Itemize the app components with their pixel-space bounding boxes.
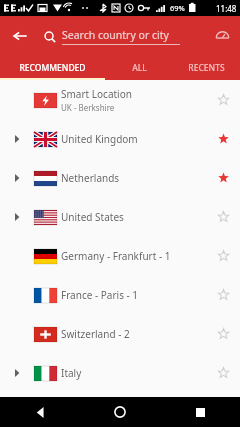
button[interactable]: Speed test bbox=[209, 23, 235, 49]
button[interactable]: Back bbox=[6, 22, 34, 50]
staticText: Search country or city bbox=[62, 28, 169, 42]
button[interactable]: Search country or city bbox=[44, 28, 200, 45]
button[interactable]: Add favourite bbox=[206, 236, 240, 275]
button[interactable]: ALL bbox=[105, 56, 173, 80]
button[interactable]: Recents bbox=[160, 397, 240, 427]
button[interactable]: Add favourite bbox=[206, 314, 240, 353]
button[interactable]: Netherlands bbox=[0, 158, 240, 197]
button[interactable]: Remove favourite bbox=[206, 119, 240, 158]
staticText: RECENTS bbox=[188, 62, 225, 74]
button[interactable]: Home bbox=[80, 397, 160, 427]
button[interactable]: Back bbox=[0, 397, 80, 427]
staticText: 11:48 bbox=[216, 3, 237, 14]
staticText: RECOMMENDED bbox=[19, 62, 86, 74]
button[interactable]: Remove favourite bbox=[206, 158, 240, 197]
staticText: Italy bbox=[61, 366, 82, 380]
staticText: Switzerland - 2 bbox=[61, 327, 130, 341]
button[interactable]: RECENTS bbox=[173, 56, 240, 80]
staticText: 69% bbox=[170, 3, 185, 13]
button[interactable]: Switzerland - 2 bbox=[0, 314, 240, 353]
button[interactable]: Add favourite bbox=[206, 197, 240, 236]
button[interactable]: United Kingdom bbox=[0, 119, 240, 158]
staticText: France - Paris - 1 bbox=[61, 288, 139, 302]
button[interactable]: United States bbox=[0, 197, 240, 236]
button[interactable]: RECOMMENDED bbox=[0, 56, 105, 80]
button[interactable]: Add favourite bbox=[206, 80, 240, 119]
staticText: Netherlands bbox=[61, 171, 120, 185]
staticText: Smart Location bbox=[61, 87, 132, 101]
staticText: ALL bbox=[132, 62, 147, 74]
button[interactable]: Add favourite bbox=[206, 275, 240, 314]
button[interactable]: Germany - Frankfurt - 1 bbox=[0, 236, 240, 275]
button[interactable]: France - Paris - 1 bbox=[0, 275, 240, 314]
staticText: United States bbox=[61, 210, 124, 224]
button[interactable]: Add favourite bbox=[206, 353, 240, 392]
button[interactable]: Italy bbox=[0, 353, 240, 392]
staticText: United Kingdom bbox=[61, 132, 138, 146]
staticText: Germany - Frankfurt - 1 bbox=[61, 249, 171, 263]
staticText: UK - Berkshire bbox=[61, 102, 115, 113]
button[interactable]: Smart Location bbox=[0, 80, 240, 119]
